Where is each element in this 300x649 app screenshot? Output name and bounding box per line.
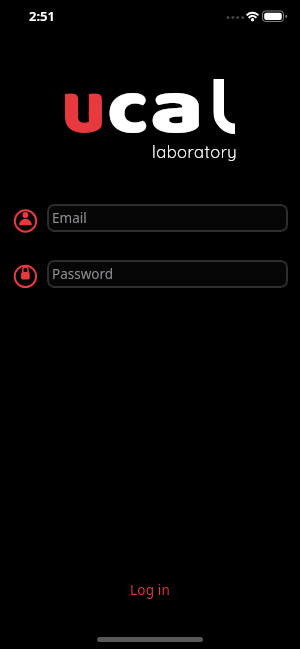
staticText: c: [107, 48, 150, 173]
staticText: Email: [52, 209, 87, 227]
staticText: a: [150, 48, 205, 173]
staticText: 2:51: [29, 7, 55, 25]
button[interactable]: Log in: [122, 573, 179, 607]
staticText: laboratory: [152, 141, 238, 162]
staticText: Password: [52, 265, 114, 283]
staticText: Log in: [130, 581, 171, 599]
button[interactable]: Email: [47, 204, 288, 232]
staticText: u: [61, 48, 106, 173]
button[interactable]: Password: [47, 260, 288, 288]
